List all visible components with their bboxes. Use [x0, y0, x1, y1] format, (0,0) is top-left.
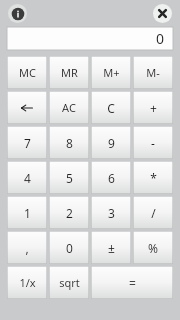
button[interactable]: AC — [49, 91, 89, 124]
button[interactable]: 2 — [49, 196, 89, 229]
staticText: C — [107, 100, 115, 116]
button[interactable]: 3 — [91, 196, 131, 229]
button[interactable]: * — [133, 161, 173, 194]
staticText: ± — [108, 240, 115, 256]
button[interactable]: sqrt — [49, 266, 89, 299]
button[interactable]: 1/x — [7, 266, 47, 299]
button[interactable]: / — [133, 196, 173, 229]
staticText: 4 — [24, 170, 31, 186]
staticText: sqrt — [59, 275, 80, 290]
staticText: 9 — [108, 135, 115, 151]
button[interactable]: MC — [7, 56, 47, 89]
button[interactable]: 8 — [49, 126, 89, 159]
staticText: + — [150, 100, 157, 116]
staticText: 0 — [156, 29, 165, 48]
staticText: MR — [61, 65, 78, 80]
staticText: % — [148, 240, 158, 256]
staticText: M+ — [103, 65, 120, 80]
button[interactable]: 6 — [91, 161, 131, 194]
staticText: - — [151, 135, 155, 151]
button[interactable]: - — [133, 126, 173, 159]
staticText: , — [25, 240, 29, 256]
button[interactable]: Info — [8, 4, 27, 23]
staticText: M- — [146, 65, 160, 80]
staticText: 8 — [66, 135, 73, 151]
button[interactable]: 7 — [7, 126, 47, 159]
button[interactable]: 0 — [49, 231, 89, 264]
staticText: 1/x — [19, 275, 36, 290]
staticText: 1 — [24, 205, 31, 221]
button[interactable]: + — [133, 91, 173, 124]
button[interactable]: 9 — [91, 126, 131, 159]
button[interactable]: 5 — [49, 161, 89, 194]
staticText: 6 — [108, 170, 115, 186]
staticText: 3 — [108, 205, 115, 221]
button[interactable]: MR — [49, 56, 89, 89]
button[interactable]: % — [133, 231, 173, 264]
staticText: * — [150, 170, 157, 186]
button[interactable]: 1 — [7, 196, 47, 229]
button[interactable]: 4 — [7, 161, 47, 194]
button[interactable]: , — [7, 231, 47, 264]
button[interactable]: M- — [133, 56, 173, 89]
button[interactable]: C — [91, 91, 131, 124]
staticText: 5 — [66, 170, 73, 186]
staticText: 2 — [66, 205, 73, 221]
staticText: 0 — [66, 240, 73, 256]
button[interactable]: Close — [153, 4, 172, 23]
staticText: / — [151, 205, 156, 221]
staticText: 7 — [24, 135, 31, 151]
staticText: AC — [62, 100, 76, 115]
button[interactable]: M+ — [91, 56, 131, 89]
button[interactable]: = — [91, 266, 173, 299]
staticText: MC — [19, 65, 36, 80]
staticText: = — [129, 275, 136, 291]
button[interactable]: ± — [91, 231, 131, 264]
button[interactable]: Backspace — [7, 91, 47, 124]
